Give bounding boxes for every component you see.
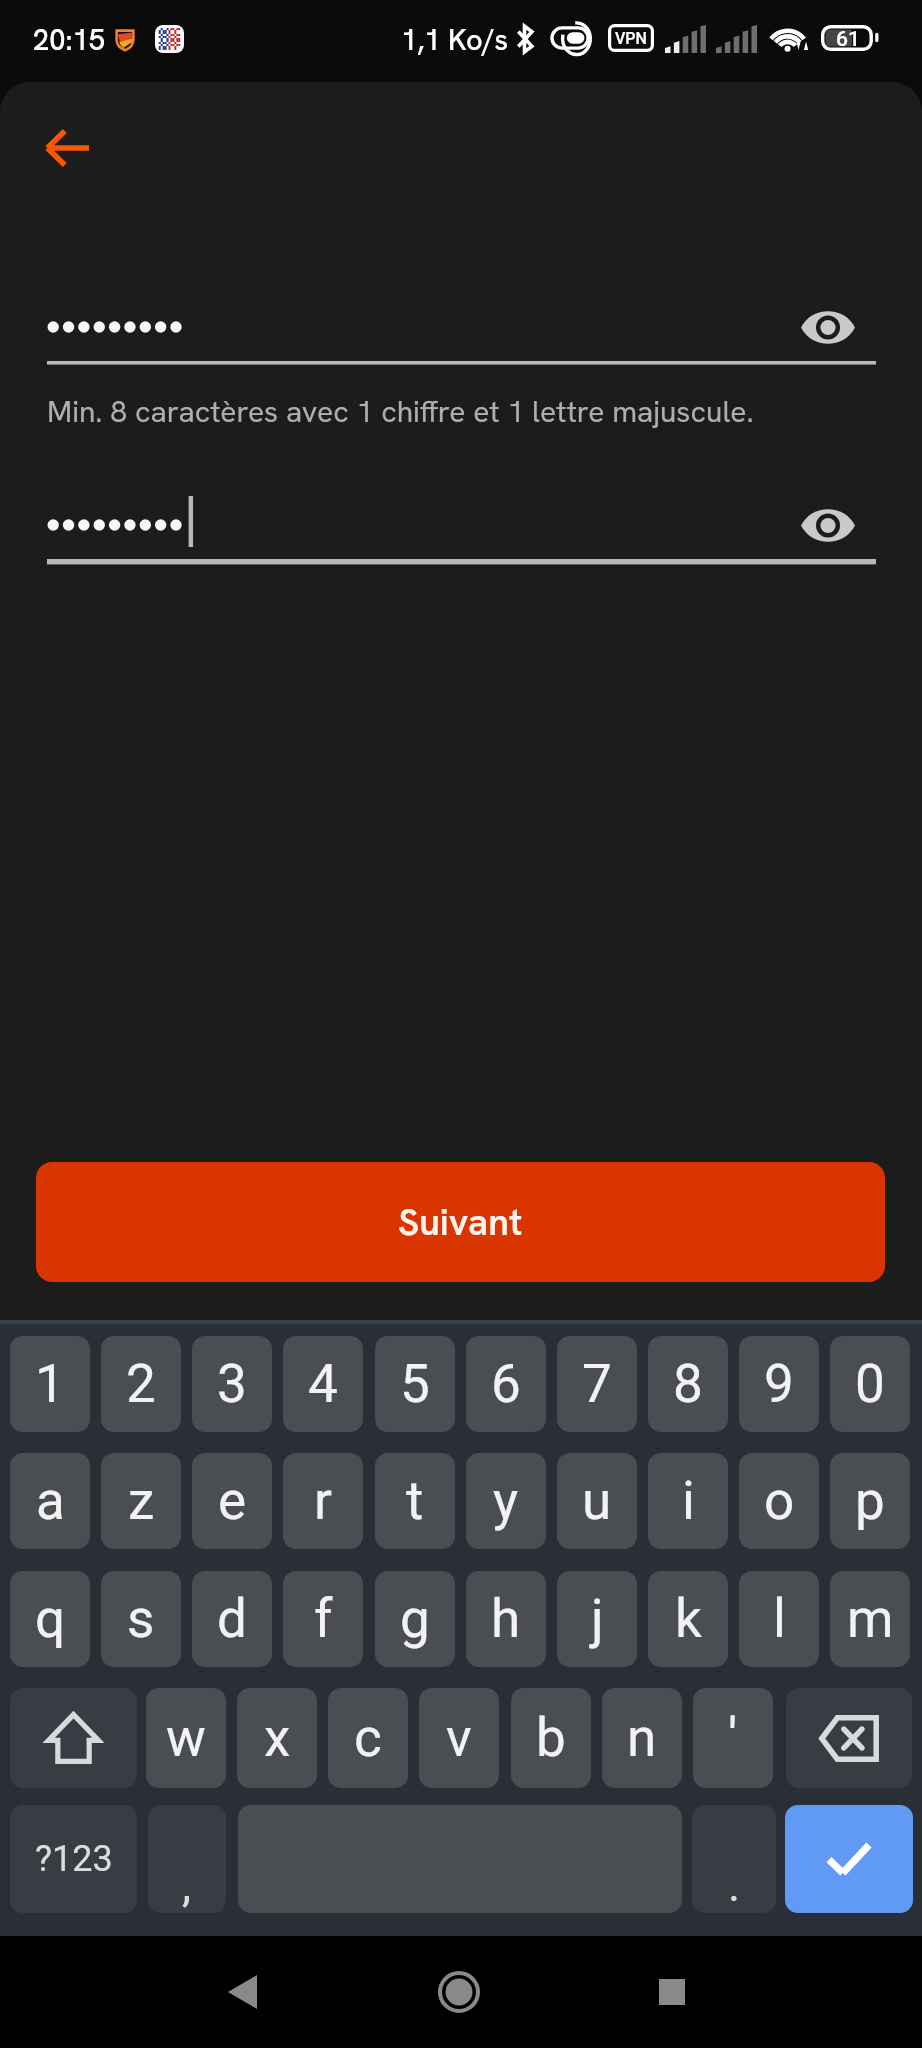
button[interactable]: 8 xyxy=(648,1336,728,1432)
button[interactable]: b xyxy=(511,1688,591,1788)
button[interactable]: m xyxy=(830,1571,910,1667)
button[interactable]: Recents xyxy=(630,1950,714,2034)
staticText: i xyxy=(682,1470,695,1532)
staticText: v xyxy=(446,1707,472,1769)
button[interactable]: 3 xyxy=(192,1336,272,1432)
button[interactable]: 5 xyxy=(375,1336,455,1432)
staticText: 1,1 Ko/s xyxy=(401,21,509,59)
staticText: 6 xyxy=(491,1353,521,1415)
button[interactable]: k xyxy=(648,1571,728,1667)
staticText: l xyxy=(773,1588,786,1650)
button[interactable]: . xyxy=(692,1805,776,1913)
button[interactable]: x xyxy=(237,1688,317,1788)
button[interactable]: Shift xyxy=(10,1688,137,1788)
staticText: 3 xyxy=(217,1353,247,1415)
staticText: n xyxy=(627,1707,657,1769)
staticText: 4 xyxy=(308,1353,338,1415)
button[interactable]: ' xyxy=(693,1688,773,1788)
button[interactable]: s xyxy=(101,1571,181,1667)
staticText: y xyxy=(493,1470,519,1532)
staticText: f xyxy=(314,1588,333,1650)
staticText: Suivant xyxy=(398,1198,523,1246)
staticText: 9 xyxy=(764,1353,794,1415)
staticText: 20:15 xyxy=(33,21,105,59)
button[interactable]: 7 xyxy=(557,1336,637,1432)
button[interactable]: i xyxy=(648,1453,728,1549)
button[interactable]: g xyxy=(375,1571,455,1667)
button[interactable]: Backspace xyxy=(786,1688,912,1788)
button[interactable]: c xyxy=(328,1688,408,1788)
button[interactable]: Enter xyxy=(785,1805,913,1913)
staticText: b xyxy=(536,1707,566,1769)
button[interactable]: h xyxy=(466,1571,546,1667)
staticText: a xyxy=(36,1470,65,1532)
button[interactable]: Back xyxy=(200,1950,284,2034)
button[interactable]: Home xyxy=(417,1950,501,2034)
staticText: t xyxy=(406,1470,424,1532)
button[interactable]: Suivant xyxy=(36,1162,885,1282)
staticText: u xyxy=(582,1470,612,1532)
button[interactable]: r xyxy=(283,1453,363,1549)
staticText: . xyxy=(728,1858,741,1912)
button[interactable]: Show password xyxy=(780,487,876,563)
staticText: 5 xyxy=(400,1353,430,1415)
button[interactable]: z xyxy=(101,1453,181,1549)
button[interactable] xyxy=(47,491,876,561)
staticText: VPN xyxy=(615,29,647,48)
staticText: p xyxy=(855,1470,885,1532)
staticText: o xyxy=(764,1470,795,1532)
button[interactable]: u xyxy=(557,1453,637,1549)
staticText: 7 xyxy=(582,1353,612,1415)
staticText: k xyxy=(675,1588,702,1650)
staticText: 2 xyxy=(126,1353,156,1415)
button[interactable]: j xyxy=(557,1571,637,1667)
button[interactable]: 2 xyxy=(101,1336,181,1432)
staticText: m xyxy=(847,1588,894,1650)
button[interactable]: 9 xyxy=(739,1336,819,1432)
staticText: c xyxy=(354,1707,382,1769)
button[interactable]: e xyxy=(192,1453,272,1549)
staticText: z xyxy=(128,1470,155,1532)
staticText: ' xyxy=(728,1707,738,1769)
staticText: 61 xyxy=(836,27,860,52)
button[interactable]: l xyxy=(739,1571,819,1667)
button[interactable]: p xyxy=(830,1453,910,1549)
button[interactable]: 1 xyxy=(10,1336,90,1432)
button[interactable]: , xyxy=(148,1805,226,1913)
button[interactable]: 0 xyxy=(830,1336,910,1432)
button[interactable]: y xyxy=(466,1453,546,1549)
staticText: d xyxy=(217,1588,247,1650)
button[interactable]: Back xyxy=(22,110,112,186)
button[interactable]: Show password xyxy=(780,289,876,365)
staticText: s xyxy=(127,1588,155,1650)
staticText: r xyxy=(314,1470,332,1532)
button[interactable]: 4 xyxy=(283,1336,363,1432)
button[interactable]: a xyxy=(10,1453,90,1549)
staticText: , xyxy=(182,1858,192,1912)
staticText: 8 xyxy=(673,1353,703,1415)
staticText: ?123 xyxy=(35,1838,113,1880)
staticText: x xyxy=(264,1707,291,1769)
staticText: j xyxy=(591,1588,604,1650)
button[interactable]: f xyxy=(283,1571,363,1667)
button[interactable] xyxy=(47,293,876,363)
staticText: 0 xyxy=(855,1353,885,1415)
button[interactable]: t xyxy=(375,1453,455,1549)
button[interactable]: ?123 xyxy=(10,1805,137,1913)
button[interactable]: 6 xyxy=(466,1336,546,1432)
staticText: h xyxy=(491,1588,521,1650)
staticText: w xyxy=(166,1707,206,1769)
button[interactable]: o xyxy=(739,1453,819,1549)
staticText: 1 xyxy=(35,1353,65,1415)
button[interactable]: d xyxy=(192,1571,272,1667)
button[interactable]: w xyxy=(146,1688,226,1788)
staticText: Min. 8 caractères avec 1 chiffre et 1 le… xyxy=(47,392,754,431)
button[interactable]: n xyxy=(602,1688,682,1788)
staticText: e xyxy=(218,1470,247,1532)
staticText: g xyxy=(400,1588,430,1650)
button[interactable]: v xyxy=(419,1688,499,1788)
staticText: q xyxy=(35,1588,66,1650)
button[interactable]: q xyxy=(10,1571,90,1667)
